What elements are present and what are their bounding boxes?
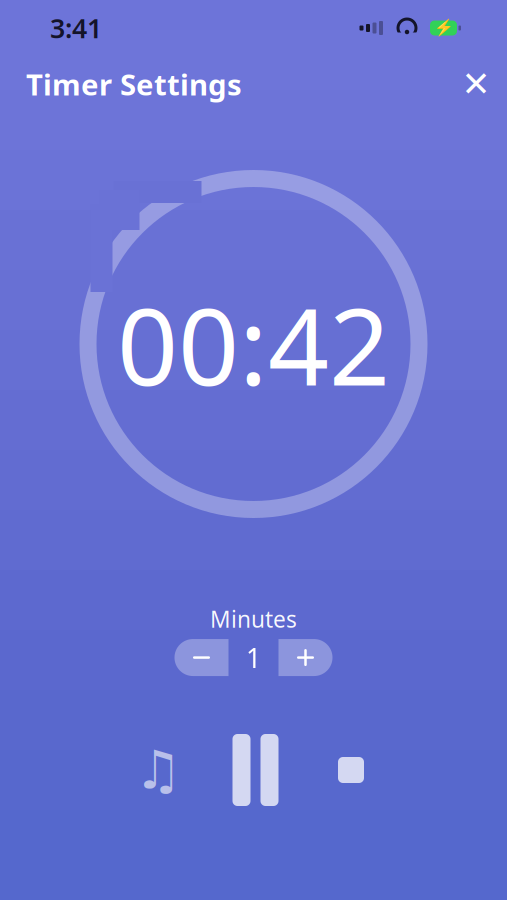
button[interactable]: Pause xyxy=(209,734,301,806)
staticText: Minutes xyxy=(210,604,297,634)
button[interactable]: Close xyxy=(452,60,500,108)
button[interactable]: Decrease minutes xyxy=(174,639,228,676)
button[interactable]: Increase minutes xyxy=(278,639,332,676)
staticText: ✕ xyxy=(461,64,490,104)
staticText: ⚡ xyxy=(433,19,453,37)
staticText: 3:41 xyxy=(50,10,102,46)
staticText: ♫ xyxy=(134,740,182,800)
staticText: 00:42 xyxy=(117,273,390,415)
staticText: 1 xyxy=(246,640,261,675)
button[interactable]: Sound xyxy=(128,735,188,805)
staticText: Timer Settings xyxy=(26,64,242,103)
button[interactable]: Stop xyxy=(323,735,379,805)
